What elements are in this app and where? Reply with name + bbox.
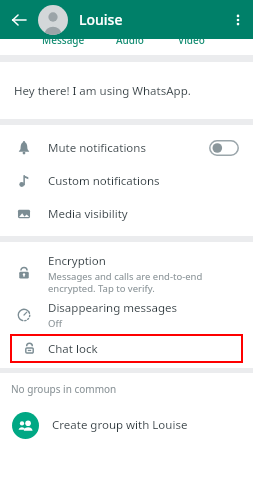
- button[interactable]: Mute notifications: [0, 131, 253, 164]
- staticText: Encryption: [48, 253, 106, 269]
- staticText: Messages and calls are end-to-end encryp…: [48, 270, 203, 294]
- staticText: Chat lock: [48, 341, 98, 357]
- button[interactable]: Mute notifications: [209, 140, 239, 156]
- staticText: Media visibility: [48, 206, 128, 222]
- staticText: Video: [178, 39, 205, 47]
- button[interactable]: Disappearing messages: [0, 296, 253, 334]
- staticText: Message: [42, 39, 85, 47]
- button[interactable]: Chat lock: [10, 334, 243, 363]
- staticText: Louise: [79, 10, 123, 29]
- button[interactable]: Create group with Louise: [0, 404, 253, 446]
- staticText: Custom notifications: [48, 173, 160, 189]
- button[interactable]: Custom notifications: [0, 164, 253, 197]
- button[interactable]: Hey there! I am using WhatsApp.: [0, 62, 253, 119]
- staticText: Mute notifications: [48, 140, 146, 156]
- button[interactable]: Media visibility: [0, 197, 253, 230]
- button[interactable]: Audio: [116, 39, 178, 55]
- button[interactable]: Message: [42, 39, 116, 55]
- button[interactable]: Profile photo: [38, 5, 68, 35]
- button[interactable]: Encryption: [0, 250, 253, 296]
- staticText: Create group with Louise: [52, 417, 188, 433]
- button[interactable]: Video: [178, 39, 240, 55]
- staticText: Audio: [116, 39, 144, 47]
- button[interactable]: Back: [0, 0, 38, 39]
- staticText: No groups in common: [11, 382, 117, 396]
- staticText: Off: [48, 317, 62, 330]
- staticText: Disappearing messages: [48, 300, 178, 316]
- button[interactable]: More options: [223, 0, 253, 39]
- staticText: Hey there! I am using WhatsApp.: [14, 83, 191, 99]
